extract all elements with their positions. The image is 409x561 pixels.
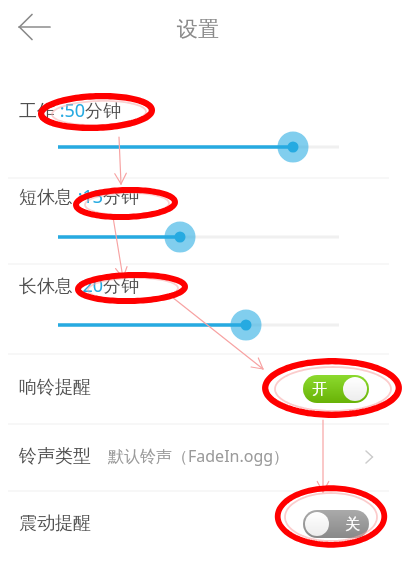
staticText: 工作 :50分钟 — [19, 98, 122, 123]
staticText: 响铃提醒 — [19, 376, 91, 399]
button[interactable]: Toggle off — [303, 510, 369, 538]
staticText: 设置 — [177, 16, 219, 42]
staticText: 默认铃声（FadeIn.ogg） — [108, 445, 290, 467]
button[interactable] — [0, 131, 409, 163]
staticText: 震动提醒 — [19, 512, 91, 535]
button[interactable]: Toggle on — [303, 375, 369, 403]
staticText: 铃声类型 — [19, 445, 91, 468]
staticText: 短休息 :13分钟 — [19, 184, 140, 209]
button[interactable]: Back — [4, 4, 60, 52]
staticText: 关 — [345, 515, 360, 534]
button[interactable] — [0, 221, 409, 253]
staticText: 长休息 :20分钟 — [19, 273, 140, 298]
button[interactable] — [0, 309, 409, 341]
staticText: 开 — [312, 380, 327, 399]
button[interactable]: Choose ringtone — [355, 441, 387, 473]
